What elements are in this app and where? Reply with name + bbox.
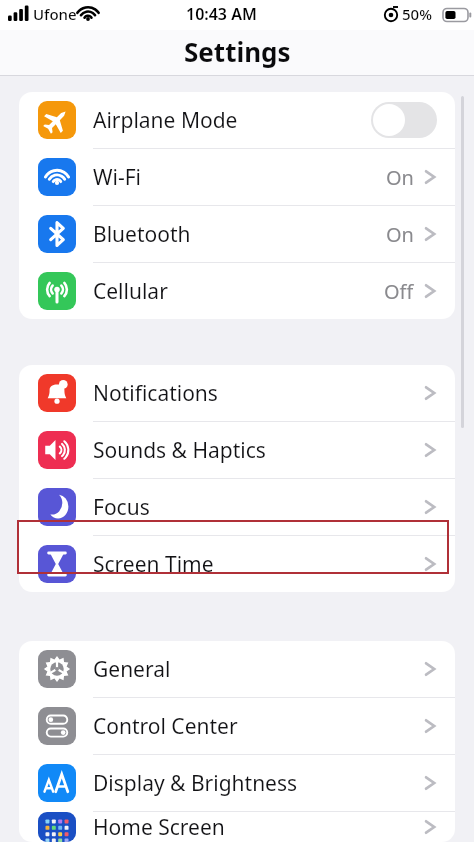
staticText: Focus <box>93 493 423 522</box>
staticText: Bluetooth <box>93 220 386 249</box>
button[interactable]: Bluetooth <box>19 206 455 262</box>
staticText: Settings <box>184 34 291 69</box>
staticText: Airplane Mode <box>93 106 371 135</box>
staticText: On <box>386 164 414 191</box>
staticText: Notifications <box>93 379 423 408</box>
button[interactable]: Home Screen <box>19 812 455 842</box>
staticText: 10:43 AM <box>186 3 257 25</box>
button[interactable]: Display & Brightness <box>19 755 455 811</box>
button[interactable]: Focus <box>19 479 455 535</box>
staticText: General <box>93 655 423 684</box>
button[interactable]: Airplane Mode <box>19 92 455 148</box>
staticText: Ufone <box>33 4 77 24</box>
staticText: On <box>386 221 414 248</box>
button[interactable]: Airplane Mode switch, off <box>371 102 437 138</box>
staticText: Off <box>384 278 414 305</box>
button[interactable]: Screen Time <box>19 536 455 592</box>
button[interactable]: Notifications <box>19 365 455 421</box>
button[interactable]: Control Center <box>19 698 455 754</box>
button[interactable]: Cellular <box>19 263 455 319</box>
staticText: 50% <box>402 4 432 24</box>
staticText: Screen Time <box>93 550 423 579</box>
button[interactable]: General <box>19 641 455 697</box>
staticText: Home Screen <box>93 813 423 842</box>
staticText: Display & Brightness <box>93 769 423 798</box>
staticText: Sounds & Haptics <box>93 436 423 465</box>
button[interactable]: Sounds & Haptics <box>19 422 455 478</box>
staticText: Control Center <box>93 712 423 741</box>
button[interactable]: Wi-Fi <box>19 149 455 205</box>
staticText: Cellular <box>93 277 384 306</box>
staticText: Wi-Fi <box>93 163 386 192</box>
